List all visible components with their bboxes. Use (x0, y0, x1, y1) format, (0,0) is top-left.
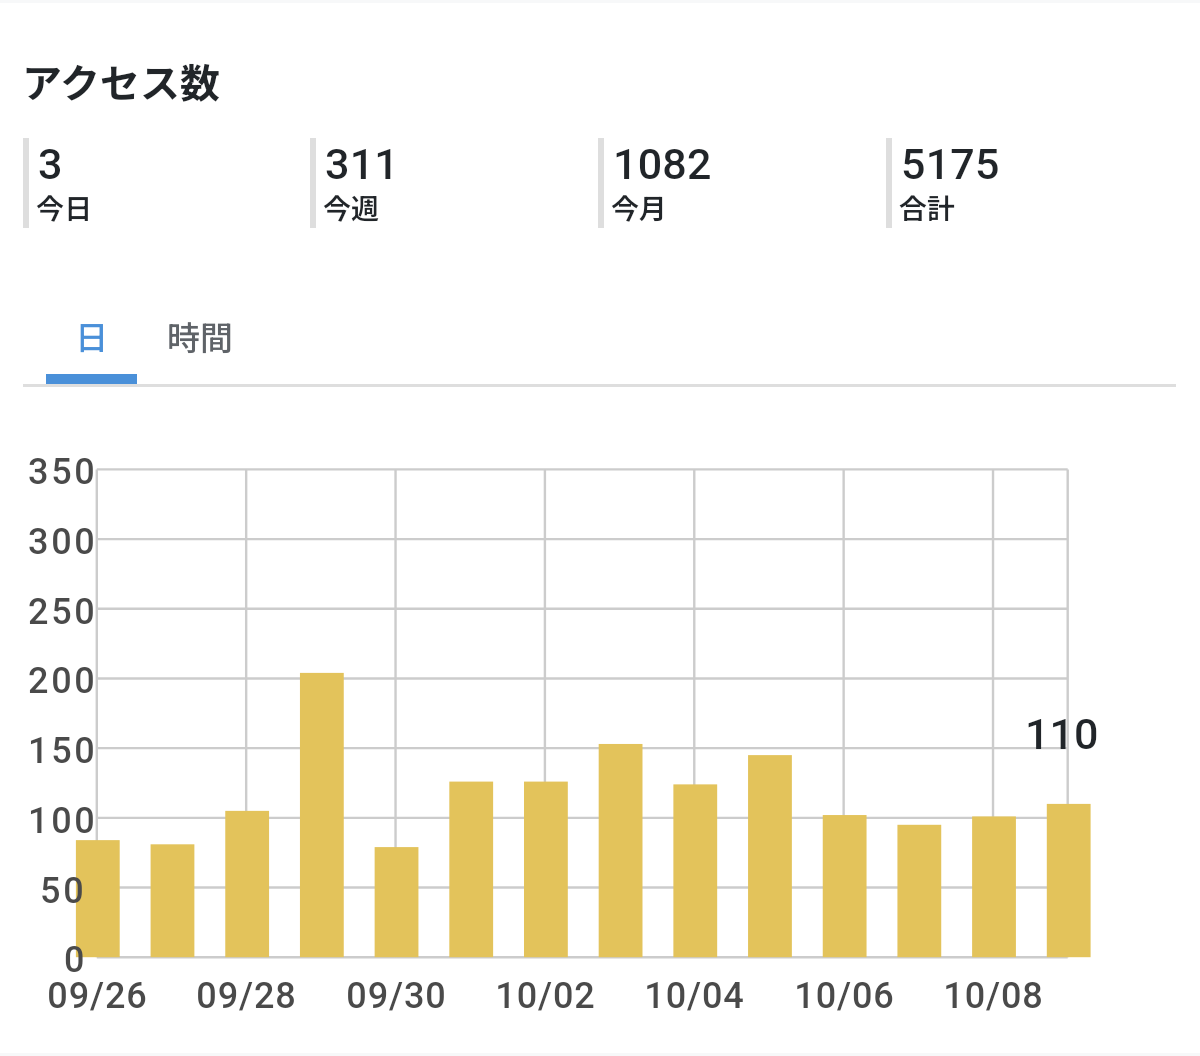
button[interactable]: 時間 (137, 292, 262, 379)
staticText: 09/28 (196, 975, 297, 1017)
staticText: 今日 (36, 187, 93, 228)
staticText: 3 (38, 139, 63, 189)
staticText: 時間 (167, 312, 233, 360)
staticText: 50 (40, 870, 87, 912)
staticText: 110 (1025, 709, 1099, 759)
button[interactable]: 5175 (886, 138, 1174, 228)
button[interactable]: 311 (310, 138, 598, 228)
staticText: 10/08 (943, 975, 1044, 1017)
staticText: 今月 (611, 187, 668, 228)
button[interactable]: 日 (46, 292, 137, 379)
staticText: アクセス数 (22, 52, 220, 110)
staticText: 311 (325, 139, 399, 189)
staticText: 10/06 (794, 975, 895, 1017)
button[interactable]: 1082 (598, 138, 886, 228)
staticText: 日 (75, 312, 108, 360)
staticText: 0 (64, 939, 88, 981)
staticText: 今週 (323, 187, 380, 228)
staticText: 10/02 (495, 975, 596, 1017)
staticText: 5175 (901, 139, 1000, 189)
staticText: 300 (28, 521, 98, 563)
staticText: 200 (28, 660, 98, 702)
staticText: 350 (28, 451, 98, 493)
staticText: 09/30 (346, 975, 447, 1017)
staticText: 250 (28, 591, 98, 633)
other: Daily access bar chart (0, 0, 1200, 1056)
staticText: 合計 (899, 187, 956, 228)
staticText: 10/04 (644, 975, 745, 1017)
button[interactable]: 3 (23, 138, 310, 228)
staticText: 1082 (613, 139, 712, 189)
staticText: 100 (28, 800, 98, 842)
staticText: 150 (28, 730, 98, 772)
staticText: 09/26 (47, 975, 148, 1017)
